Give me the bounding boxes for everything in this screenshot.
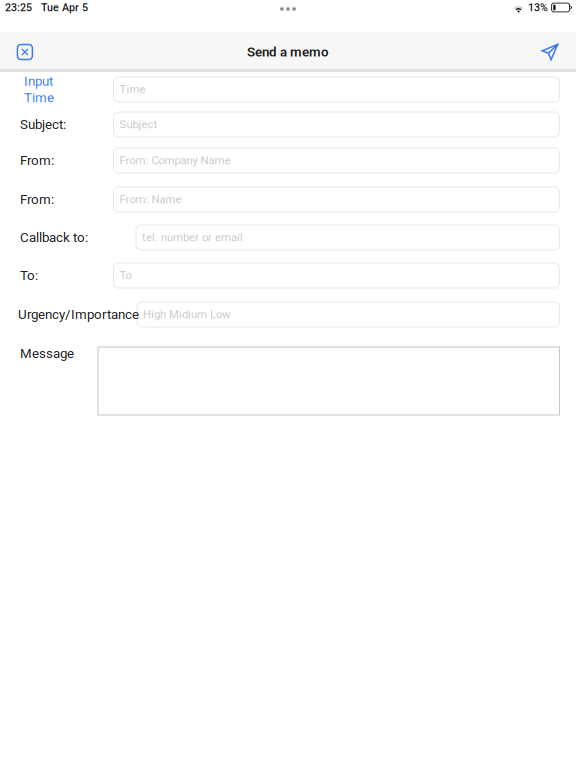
staticText: Time — [119, 83, 145, 96]
button[interactable]: Send — [528, 32, 572, 72]
button[interactable]: Message — [98, 347, 559, 415]
button[interactable]: Input — [0, 73, 64, 105]
staticText: 13% — [528, 1, 548, 14]
staticText: Send a memo — [247, 44, 329, 60]
staticText: Tue Apr 5 — [41, 1, 88, 14]
button[interactable]: Callback to: — [136, 225, 559, 250]
staticText: Subject: — [20, 117, 66, 132]
staticText: To: — [20, 268, 38, 283]
button[interactable]: To: — [113, 263, 559, 288]
staticText: From: Company Name — [119, 154, 230, 167]
button[interactable]: Urgency/Importance — [137, 302, 559, 327]
staticText: From: — [20, 192, 54, 207]
staticText: From: Name — [119, 193, 181, 206]
button[interactable]: From: — [113, 148, 559, 173]
staticText: Urgency/Importance — [18, 307, 139, 322]
button[interactable]: From: — [113, 187, 559, 212]
staticText: High Midium Low — [143, 308, 231, 321]
staticText: Message — [20, 346, 74, 361]
button[interactable]: Subject: — [113, 112, 559, 137]
button[interactable]: Time — [113, 77, 559, 102]
staticText: Input — [24, 73, 53, 89]
staticText: Subject — [119, 118, 157, 131]
staticText: 23:25 — [5, 1, 32, 14]
staticText: Time — [24, 90, 54, 106]
button[interactable]: Close — [3, 32, 47, 72]
staticText: From: — [20, 153, 54, 168]
staticText: To — [119, 269, 131, 282]
staticText: Callback to: — [20, 230, 88, 245]
staticText: tel. number or email — [142, 231, 243, 244]
